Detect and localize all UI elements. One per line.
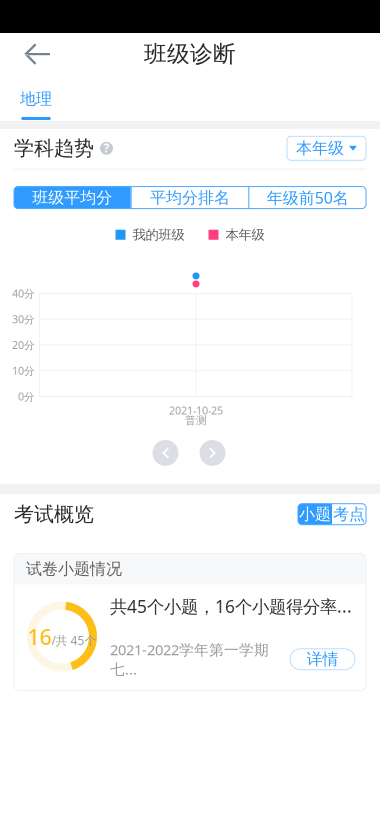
staticText: 班级平均分 — [32, 188, 112, 207]
staticText: 考试概览 — [14, 502, 94, 526]
staticText: 平均分排名 — [150, 188, 230, 207]
button[interactable]: 本年级 — [287, 136, 366, 160]
staticText: 地理 — [20, 89, 52, 109]
staticText: 我的班级 — [132, 227, 184, 243]
staticText: 40分 — [12, 286, 35, 301]
staticText: 详情 — [306, 649, 338, 669]
button[interactable]: 详情 — [290, 649, 355, 670]
staticText: 45个 — [67, 632, 96, 648]
button[interactable]: 平均分排名 — [132, 187, 248, 209]
button[interactable]: 小题 — [298, 504, 332, 525]
staticText: 10分 — [12, 364, 35, 378]
staticText: 考点 — [333, 504, 365, 524]
staticText: 共45个小题，16个小题得分率低于年级 — [110, 594, 355, 618]
staticText: 0分 — [18, 389, 35, 404]
staticText: 2021-2022学年第一学期七... — [110, 640, 269, 679]
staticText: 学科趋势 — [14, 136, 94, 161]
button[interactable]: 上一页 — [152, 440, 178, 466]
staticText: ? — [103, 140, 109, 156]
button[interactable]: 班级平均分 — [14, 187, 131, 209]
button[interactable]: 下一页 — [199, 440, 225, 466]
staticText: /共 — [51, 632, 67, 648]
staticText: 本年级 — [225, 227, 264, 243]
staticText: 16 — [27, 622, 51, 651]
staticText: 班级诊断 — [144, 40, 236, 68]
button[interactable]: 年级前50名 — [249, 187, 366, 209]
staticText: 试卷小题情况 — [26, 559, 122, 579]
staticText: 小题 — [299, 504, 331, 524]
staticText: 年级前50名 — [267, 187, 349, 208]
staticText: 2021-10-25 — [169, 403, 223, 418]
staticText: 普测 — [185, 414, 207, 427]
staticText: 20分 — [12, 338, 35, 352]
button[interactable]: 返回 — [0, 33, 60, 75]
button[interactable]: 考点 — [332, 504, 366, 525]
staticText: 30分 — [12, 312, 35, 326]
staticText: 本年级 — [296, 138, 344, 158]
button[interactable]: 地理 — [0, 75, 52, 121]
